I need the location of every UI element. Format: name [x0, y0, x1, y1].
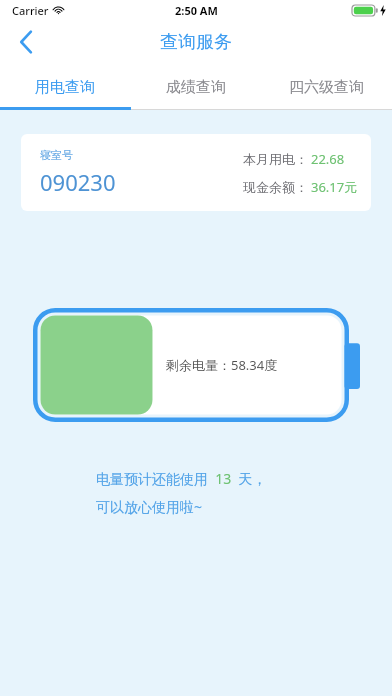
staticText: 现金余额：: [243, 179, 308, 195]
staticText: 090230: [40, 167, 116, 197]
staticText: 剩余电量：58.34度: [166, 356, 278, 374]
button[interactable]: 用电查询: [0, 64, 130, 110]
staticText: 电量预计还能使用 13 天，: [96, 469, 267, 488]
staticText: 36.17元: [311, 178, 358, 196]
staticText: 寝室号: [40, 148, 73, 162]
staticText: 22.68: [311, 150, 345, 168]
button[interactable]: 寝室号: [21, 134, 371, 211]
staticText: 四六级查询: [289, 78, 364, 97]
staticText: 成绩查询: [166, 78, 226, 97]
staticText: 查询服务: [160, 31, 232, 54]
button[interactable]: 成绩查询: [130, 64, 261, 110]
staticText: 2:50 AM: [175, 3, 218, 18]
button[interactable]: Back: [0, 20, 52, 64]
button[interactable]: 四六级查询: [261, 64, 392, 110]
staticText: 本月用电：: [243, 151, 308, 167]
staticText: Carrier: [12, 3, 49, 18]
staticText: 可以放心使用啦~: [96, 497, 203, 516]
staticText: 用电查询: [35, 78, 95, 97]
